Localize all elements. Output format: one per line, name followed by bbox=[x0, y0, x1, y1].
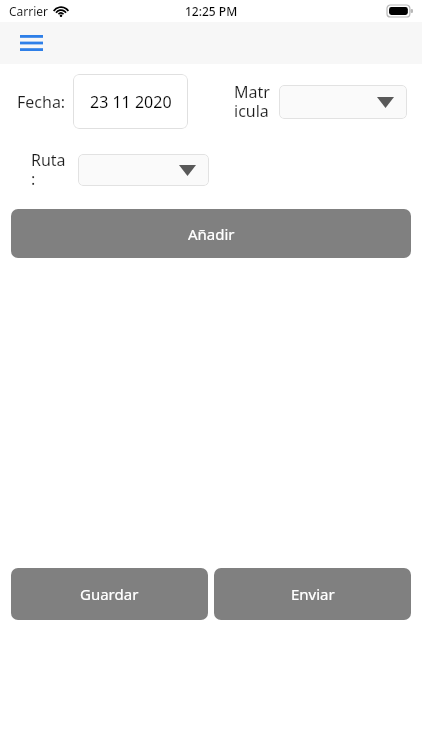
button[interactable]: Guardar bbox=[11, 568, 208, 620]
staticText: Fecha: bbox=[17, 91, 66, 113]
staticText: 23 11 2020 bbox=[90, 91, 172, 113]
button[interactable]: Enviar bbox=[214, 568, 411, 620]
staticText: 12:25 PM bbox=[185, 3, 238, 19]
staticText: Carrier bbox=[9, 3, 49, 19]
staticText: Enviar bbox=[291, 584, 335, 604]
button[interactable]: Menu bbox=[16, 30, 46, 56]
button[interactable]: Añadir bbox=[11, 209, 411, 258]
staticText: Ruta : bbox=[31, 149, 66, 190]
staticText: Añadir bbox=[188, 224, 235, 244]
staticText: Matricula bbox=[234, 81, 272, 122]
button[interactable]: 23 11 2020 bbox=[73, 74, 188, 129]
staticText: Guardar bbox=[80, 584, 139, 604]
button[interactable]: Select option bbox=[279, 85, 407, 119]
button[interactable]: Select option bbox=[78, 154, 209, 186]
